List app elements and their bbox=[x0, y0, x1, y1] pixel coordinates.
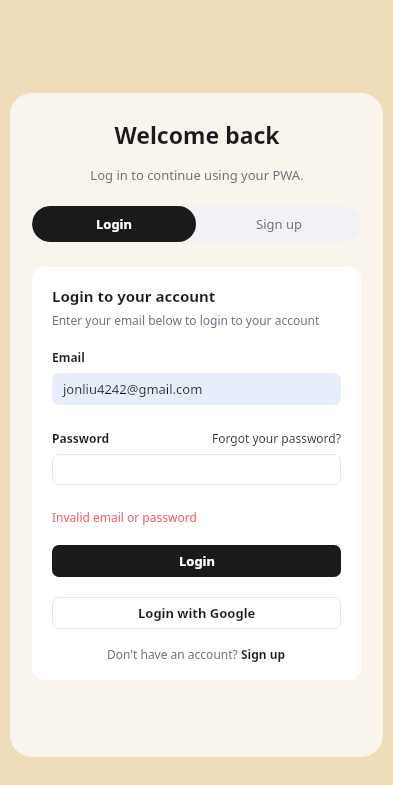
staticText: Login to your account bbox=[52, 286, 216, 306]
button[interactable]: Login with Google bbox=[52, 597, 341, 629]
staticText: Sign up bbox=[256, 215, 302, 233]
staticText: Log in to continue using your PWA. bbox=[90, 166, 304, 184]
staticText: Forgot your password? bbox=[212, 430, 341, 446]
staticText: Sign up bbox=[241, 646, 286, 662]
staticText: Invalid email or password bbox=[52, 509, 197, 525]
button[interactable]: Login bbox=[32, 206, 196, 242]
staticText: Don't have an account? bbox=[107, 646, 241, 662]
button[interactable]: Login bbox=[52, 545, 341, 577]
staticText: Login bbox=[96, 215, 132, 233]
staticText: Welcome back bbox=[114, 119, 280, 150]
button[interactable]: Don't have an account? bbox=[107, 646, 286, 662]
button[interactable]: Sign up bbox=[196, 206, 361, 242]
button[interactable] bbox=[52, 454, 341, 485]
staticText: Login bbox=[179, 552, 215, 570]
staticText: Login with Google bbox=[138, 604, 256, 622]
staticText: Email bbox=[52, 349, 85, 365]
staticText: Enter your email below to login to your … bbox=[52, 312, 320, 328]
button[interactable]: Forgot your password? bbox=[212, 430, 341, 446]
button[interactable]: jonliu4242@gmail.com bbox=[52, 373, 341, 405]
staticText: Password bbox=[52, 430, 110, 446]
staticText: jonliu4242@gmail.com bbox=[63, 380, 203, 398]
